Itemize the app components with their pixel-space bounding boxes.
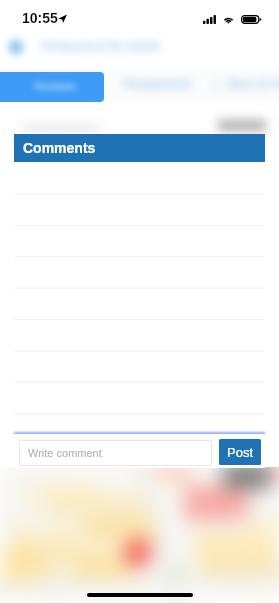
button[interactable]: [0, 72, 104, 102]
staticText: 10:55: [22, 10, 58, 26]
staticText: Write comment: [28, 447, 102, 459]
button[interactable]: Comments: [14, 134, 265, 162]
button[interactable]: Post: [219, 439, 261, 465]
button[interactable]: [14, 413, 265, 444]
staticText: Comments: [23, 140, 96, 156]
other: Cellular signal: [203, 15, 216, 24]
other: Battery: [241, 15, 262, 24]
other: Location: [58, 14, 67, 23]
staticText: Post: [227, 445, 254, 460]
other: Wi-Fi: [223, 15, 234, 24]
button[interactable]: Write comment: [19, 440, 212, 466]
